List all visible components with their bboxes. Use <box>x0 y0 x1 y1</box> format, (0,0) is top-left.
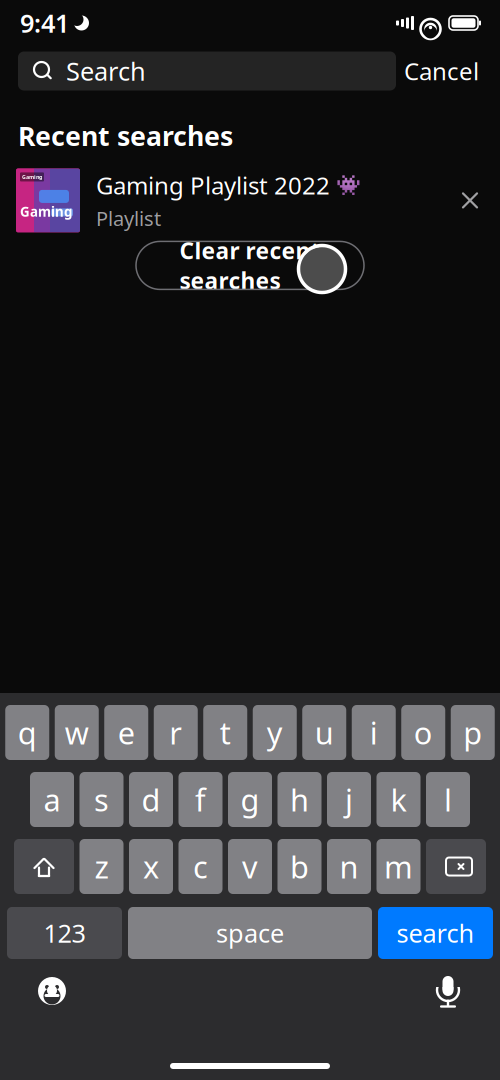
staticText: o <box>414 712 433 753</box>
button[interactable]: h <box>277 772 321 827</box>
button[interactable]: a <box>30 772 74 827</box>
button[interactable]: o <box>401 705 445 760</box>
staticText: 9:41 <box>20 6 69 40</box>
staticText: f <box>195 779 206 820</box>
button[interactable]: space <box>128 907 372 959</box>
button[interactable]: j <box>327 772 371 827</box>
staticText: search <box>396 916 474 950</box>
button[interactable]: p <box>451 705 495 760</box>
staticText: 123 <box>43 916 85 950</box>
staticText: Gaming Playlist 2022 <box>96 169 330 201</box>
staticText: c <box>193 846 208 887</box>
button[interactable]: n <box>327 839 371 894</box>
staticText: i <box>370 712 378 753</box>
staticText: s <box>94 779 109 820</box>
staticText: Gaming <box>22 173 42 180</box>
button[interactable]: k <box>376 772 420 827</box>
staticText: x <box>143 846 159 887</box>
staticText: p <box>463 712 482 753</box>
staticText: q <box>18 712 37 753</box>
staticText: u <box>315 712 334 753</box>
button[interactable]: Remove from recent searches <box>450 178 490 222</box>
staticText: l <box>444 779 452 820</box>
button[interactable]: Delete <box>426 839 486 894</box>
button[interactable]: l <box>426 772 470 827</box>
staticText: Search <box>66 54 146 88</box>
button[interactable]: d <box>129 772 173 827</box>
staticText: Clear recent searches <box>179 235 320 295</box>
staticText: a <box>43 779 60 820</box>
button[interactable]: s <box>79 772 123 827</box>
staticText: j <box>345 779 353 820</box>
staticText: w <box>65 712 89 753</box>
staticText: v <box>242 846 258 887</box>
staticText: Cancel <box>404 55 479 87</box>
button[interactable]: b <box>277 839 321 894</box>
button[interactable]: f <box>178 772 222 827</box>
button[interactable]: t <box>203 705 247 760</box>
button[interactable]: q <box>5 705 49 760</box>
staticText: t <box>220 712 231 753</box>
button[interactable]: c <box>178 839 222 894</box>
button[interactable]: Cancel <box>396 51 487 90</box>
button[interactable]: x <box>129 839 173 894</box>
staticText: k <box>390 779 406 820</box>
staticText: d <box>141 779 160 820</box>
staticText: h <box>290 779 309 820</box>
staticText: Playlist <box>96 205 161 232</box>
button[interactable]: e <box>104 705 148 760</box>
staticText: z <box>94 846 108 887</box>
button[interactable]: g <box>228 772 272 827</box>
staticText: r <box>169 712 182 753</box>
button[interactable]: Emoji <box>24 969 80 1013</box>
button[interactable]: search <box>378 907 493 959</box>
staticText: Recent searches <box>18 118 233 153</box>
button[interactable]: m <box>376 839 420 894</box>
button[interactable]: Clear recent searches <box>136 241 364 289</box>
button[interactable]: Shift <box>14 839 74 894</box>
button[interactable]: i <box>352 705 396 760</box>
staticText: Gaming <box>20 203 72 220</box>
button[interactable]: Dictate <box>420 969 476 1013</box>
staticText: b <box>290 846 309 887</box>
staticText: y <box>267 712 283 753</box>
staticText: g <box>240 779 259 820</box>
button[interactable]: y <box>253 705 297 760</box>
staticText: space <box>216 916 284 950</box>
staticText: 👾 <box>336 174 361 197</box>
button[interactable]: w <box>55 705 99 760</box>
button[interactable]: z <box>79 839 123 894</box>
button[interactable]: v <box>228 839 272 894</box>
button[interactable]: r <box>154 705 198 760</box>
staticText: n <box>339 846 358 887</box>
button[interactable]: 123 <box>7 907 122 959</box>
staticText: e <box>118 712 135 753</box>
button[interactable]: u <box>302 705 346 760</box>
staticText: m <box>384 846 413 887</box>
